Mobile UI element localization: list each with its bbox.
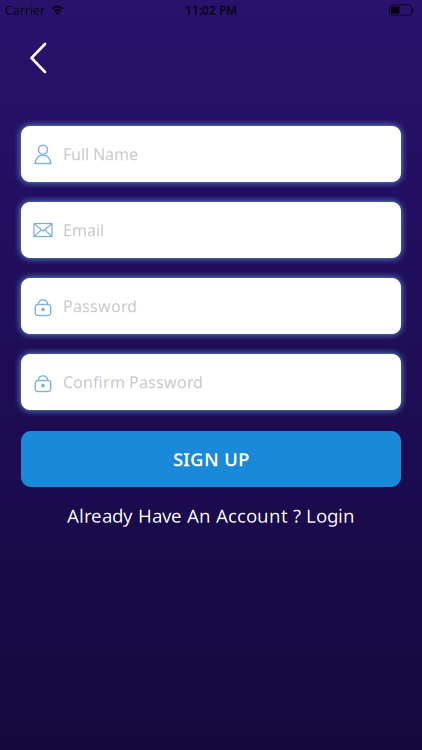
staticText: Already Have An Account ? Login bbox=[67, 503, 355, 528]
staticText: Confirm Password bbox=[63, 371, 203, 393]
staticText: 11:02 PM bbox=[185, 2, 237, 18]
staticText: Full Name bbox=[63, 143, 138, 165]
button[interactable]: Password bbox=[21, 278, 401, 334]
staticText: Password bbox=[63, 295, 137, 317]
button[interactable]: Already Have An Account ? Login bbox=[67, 503, 355, 528]
button[interactable]: Full Name bbox=[21, 126, 401, 182]
button[interactable]: Email bbox=[21, 202, 401, 258]
staticText: Email bbox=[63, 219, 104, 241]
staticText: Carrier bbox=[5, 2, 45, 18]
button[interactable]: Confirm Password bbox=[21, 354, 401, 410]
staticText: SIGN UP bbox=[173, 447, 249, 471]
button[interactable]: Back bbox=[31, 44, 45, 72]
button[interactable]: SIGN UP bbox=[21, 431, 401, 487]
